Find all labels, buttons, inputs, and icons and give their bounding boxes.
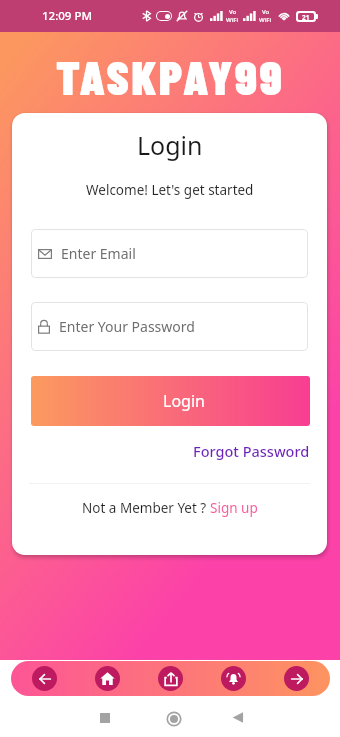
staticText: WiFi: [259, 16, 272, 24]
button[interactable]: Forgot Password: [12, 441, 310, 461]
staticText: Login: [137, 128, 203, 162]
button[interactable]: Login: [31, 376, 310, 426]
button[interactable]: Back: [232, 711, 245, 724]
staticText: 12:09 PM: [42, 8, 93, 24]
button[interactable]: Notifications: [221, 666, 246, 691]
button[interactable]: Back: [32, 666, 57, 691]
staticText: Login: [163, 390, 205, 412]
staticText: 21: [302, 13, 310, 20]
staticText: Not a Member Yet ?: [82, 499, 210, 517]
staticText: Vo: [229, 8, 237, 16]
button[interactable]: Enter Your Password: [31, 302, 308, 351]
staticText: TASKPAY99: [56, 47, 285, 105]
button[interactable]: Forward: [284, 666, 309, 691]
button[interactable]: Share: [158, 666, 183, 691]
staticText: Vo: [262, 8, 270, 16]
button[interactable]: Home: [166, 711, 182, 727]
staticText: Enter Email: [61, 244, 136, 263]
button[interactable]: Sign up: [210, 499, 258, 517]
button[interactable]: Home: [95, 666, 120, 691]
staticText: Enter Your Password: [59, 317, 195, 336]
staticText: WiFi: [226, 16, 239, 24]
button[interactable]: Enter Email: [31, 229, 308, 278]
staticText: Forgot Password: [193, 441, 310, 461]
staticText: Welcome! Let's get started: [86, 181, 254, 199]
